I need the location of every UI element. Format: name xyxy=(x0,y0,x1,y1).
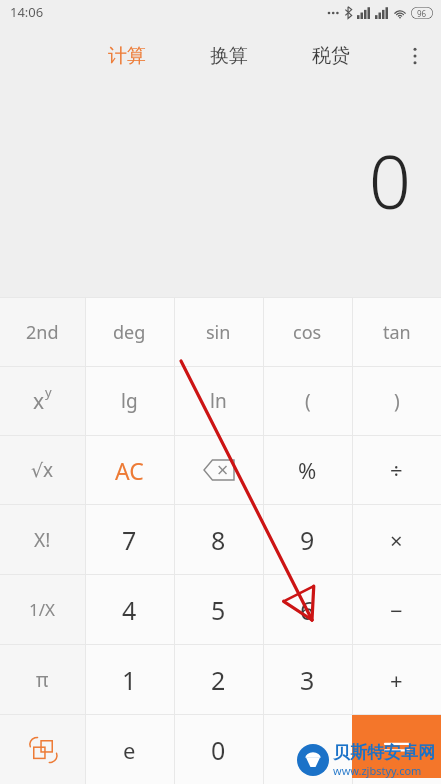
button[interactable]: 8 xyxy=(174,505,263,574)
button[interactable]: Backspace xyxy=(174,436,263,504)
button[interactable]: lg xyxy=(85,367,174,435)
staticText: 计算 xyxy=(108,44,146,68)
staticText: ( xyxy=(305,388,311,414)
staticText: 换算 xyxy=(210,44,248,68)
button[interactable]: 5 xyxy=(174,575,263,644)
staticText: 6 xyxy=(300,593,315,627)
staticText: e xyxy=(123,735,136,765)
button[interactable]: 0 xyxy=(174,715,263,784)
staticText: 96 xyxy=(417,8,427,19)
staticText: 14:06 xyxy=(10,3,44,21)
staticText: 1 xyxy=(122,663,137,697)
staticText: 5 xyxy=(211,593,226,627)
staticText: deg xyxy=(113,320,146,345)
button[interactable]: cos xyxy=(263,298,352,366)
staticText: 2 xyxy=(211,663,226,697)
button[interactable]: − xyxy=(352,575,441,644)
staticText: . xyxy=(304,733,311,767)
staticText: + xyxy=(390,665,403,695)
button[interactable]: More options xyxy=(395,36,435,76)
button[interactable]: X! xyxy=(0,505,85,574)
button[interactable]: sin xyxy=(174,298,263,366)
button[interactable]: + xyxy=(352,645,441,714)
staticText: 2nd xyxy=(26,320,59,345)
button[interactable]: 4 xyxy=(85,575,174,644)
button[interactable]: Switch mode xyxy=(0,715,85,784)
staticText: 1/X xyxy=(29,598,56,621)
button[interactable]: 7 xyxy=(85,505,174,574)
button[interactable]: 6 xyxy=(263,575,352,644)
staticText: ) xyxy=(394,388,400,414)
staticText: × xyxy=(390,525,403,555)
staticText: 4 xyxy=(122,593,137,627)
staticText: X! xyxy=(34,527,51,553)
button[interactable]: 换算 xyxy=(200,38,258,74)
button[interactable]: deg xyxy=(85,298,174,366)
staticText: ÷ xyxy=(390,455,403,485)
button[interactable]: 3 xyxy=(263,645,352,714)
button[interactable]: √x xyxy=(0,436,85,504)
staticText: √x xyxy=(31,457,54,483)
staticText: 3 xyxy=(300,663,315,697)
button[interactable]: 税贷 xyxy=(302,38,360,74)
staticText: ln xyxy=(210,388,227,414)
button[interactable]: 1 xyxy=(85,645,174,714)
staticText: π xyxy=(36,667,49,693)
staticText: www.zjbstyy.com xyxy=(333,763,422,778)
staticText: % xyxy=(298,455,317,485)
button[interactable]: ÷ xyxy=(352,436,441,504)
button[interactable]: x xyxy=(0,367,85,435)
staticText: − xyxy=(390,595,403,625)
button[interactable]: 计算 xyxy=(98,38,156,74)
staticText: lg xyxy=(121,388,138,414)
staticText: 税贷 xyxy=(312,44,350,68)
staticText: tan xyxy=(383,320,411,345)
staticText: cos xyxy=(293,320,322,345)
staticText: 贝斯特安卓网 xyxy=(333,742,435,763)
staticText: 9 xyxy=(300,523,315,557)
button[interactable]: . xyxy=(263,715,352,784)
staticText: AC xyxy=(115,455,144,486)
staticText: 7 xyxy=(122,523,137,557)
staticText: y xyxy=(45,383,52,401)
button[interactable]: tan xyxy=(352,298,441,366)
button[interactable]: ( xyxy=(263,367,352,435)
button[interactable]: AC xyxy=(85,436,174,504)
button[interactable]: × xyxy=(352,505,441,574)
button[interactable]: 2 xyxy=(174,645,263,714)
staticText: x xyxy=(33,387,45,416)
button[interactable]: % xyxy=(263,436,352,504)
button[interactable]: ln xyxy=(174,367,263,435)
staticText: 8 xyxy=(211,523,226,557)
button[interactable]: 9 xyxy=(263,505,352,574)
staticText: 0 xyxy=(211,733,226,767)
button[interactable]: π xyxy=(0,645,85,714)
button[interactable]: ) xyxy=(352,367,441,435)
staticText: 0 xyxy=(368,130,411,231)
button[interactable]: Equals xyxy=(352,715,441,784)
button[interactable]: e xyxy=(85,715,174,784)
staticText: sin xyxy=(206,320,231,345)
button[interactable]: 1/X xyxy=(0,575,85,644)
button[interactable]: 2nd xyxy=(0,298,85,366)
